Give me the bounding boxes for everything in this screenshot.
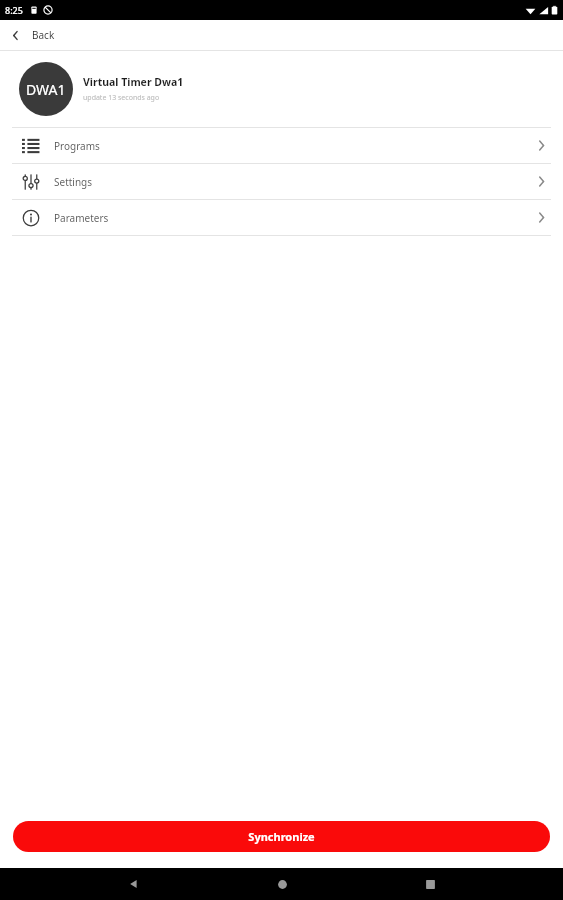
staticText: update 13 seconds ago [83,93,160,103]
button[interactable]: Settings [0,164,563,199]
staticText: Synchronize [248,829,315,844]
staticText: 8:25 [5,4,23,16]
button[interactable]: Home [267,869,297,899]
staticText: Back [32,28,55,42]
button[interactable]: Programs [0,128,563,163]
button[interactable]: Back [0,20,563,50]
staticText: Parameters [54,211,109,225]
button[interactable]: Synchronize [13,821,550,852]
button[interactable]: Back [119,869,149,899]
staticText: Settings [54,175,93,189]
button[interactable]: Parameters [0,200,563,235]
staticText: DWA1 [26,80,66,99]
button[interactable]: Recent apps [415,869,445,899]
staticText: Virtual Timer Dwa1 [83,75,184,89]
button[interactable]: DWA1 [0,51,563,127]
staticText: Programs [54,139,100,153]
